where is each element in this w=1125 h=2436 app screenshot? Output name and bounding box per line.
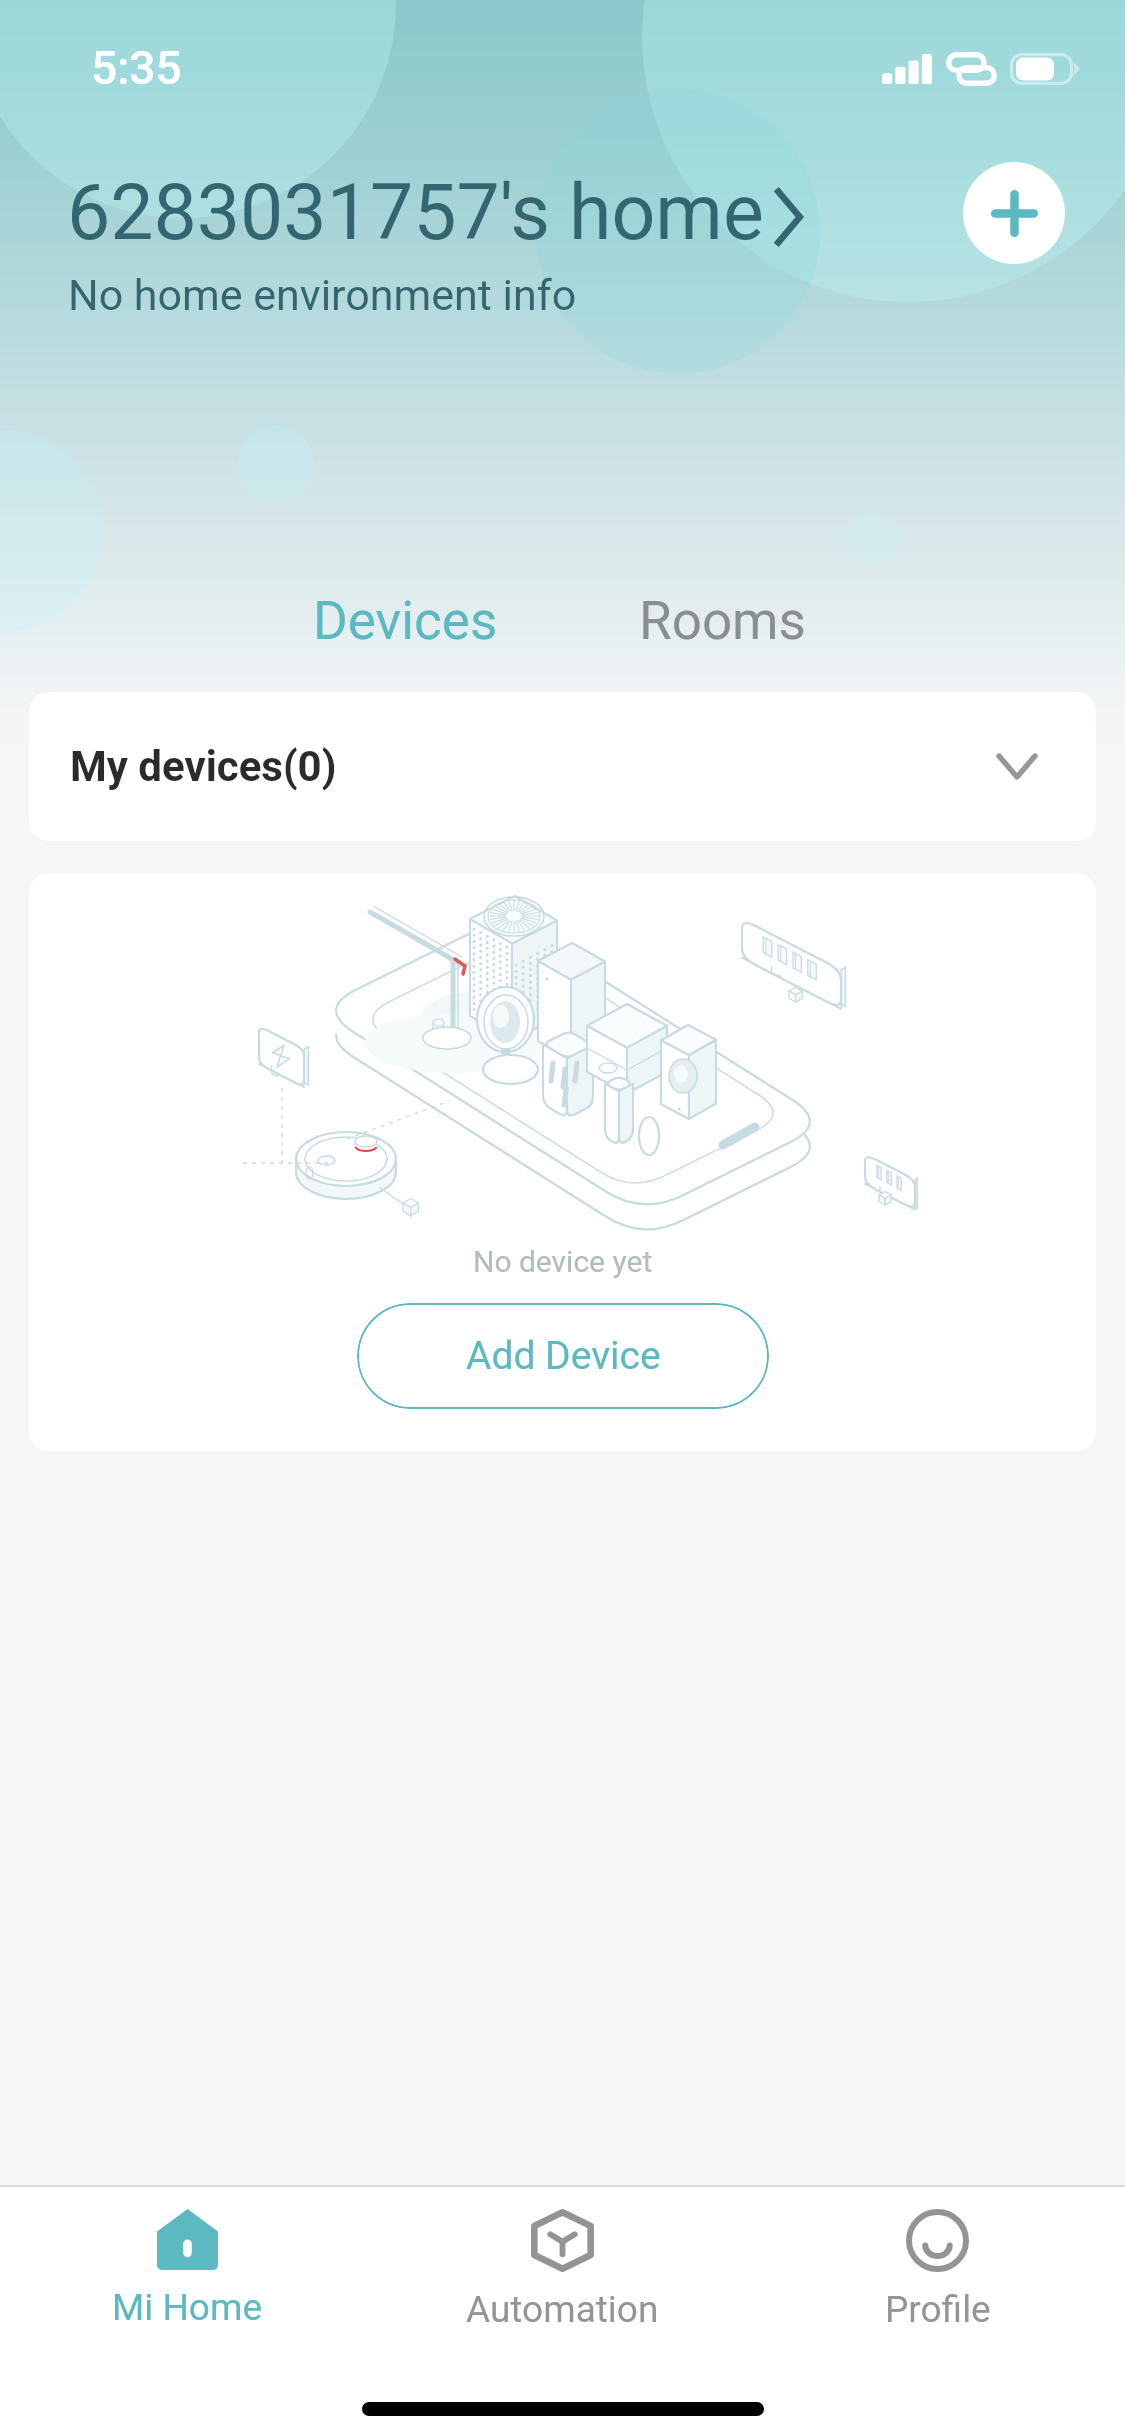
button[interactable]: Devices	[303, 582, 508, 660]
button[interactable]: Rooms	[629, 582, 816, 660]
staticText: 5:35	[91, 41, 182, 95]
button[interactable]: My devices(0)	[29, 692, 1096, 841]
staticText: Rooms	[639, 590, 806, 652]
button[interactable]: Mi Home	[0, 2187, 375, 2396]
staticText: No home environment info	[68, 270, 577, 320]
staticText: My devices(0)	[70, 742, 337, 791]
staticText: Automation	[466, 2288, 659, 2331]
button[interactable]: Automation	[375, 2187, 750, 2396]
staticText: No device yet	[473, 1244, 653, 1279]
staticText: 6283031757's home	[67, 168, 764, 258]
staticText: Add Device	[466, 1333, 661, 1379]
staticText: Devices	[313, 590, 498, 652]
button[interactable]: Add Device	[357, 1303, 769, 1409]
button[interactable]: 6283031757's home	[67, 168, 802, 258]
button[interactable]: Profile	[750, 2187, 1125, 2396]
button[interactable]: Add device	[963, 162, 1065, 264]
staticText: Mi Home	[112, 2286, 263, 2329]
staticText: Profile	[885, 2288, 991, 2331]
